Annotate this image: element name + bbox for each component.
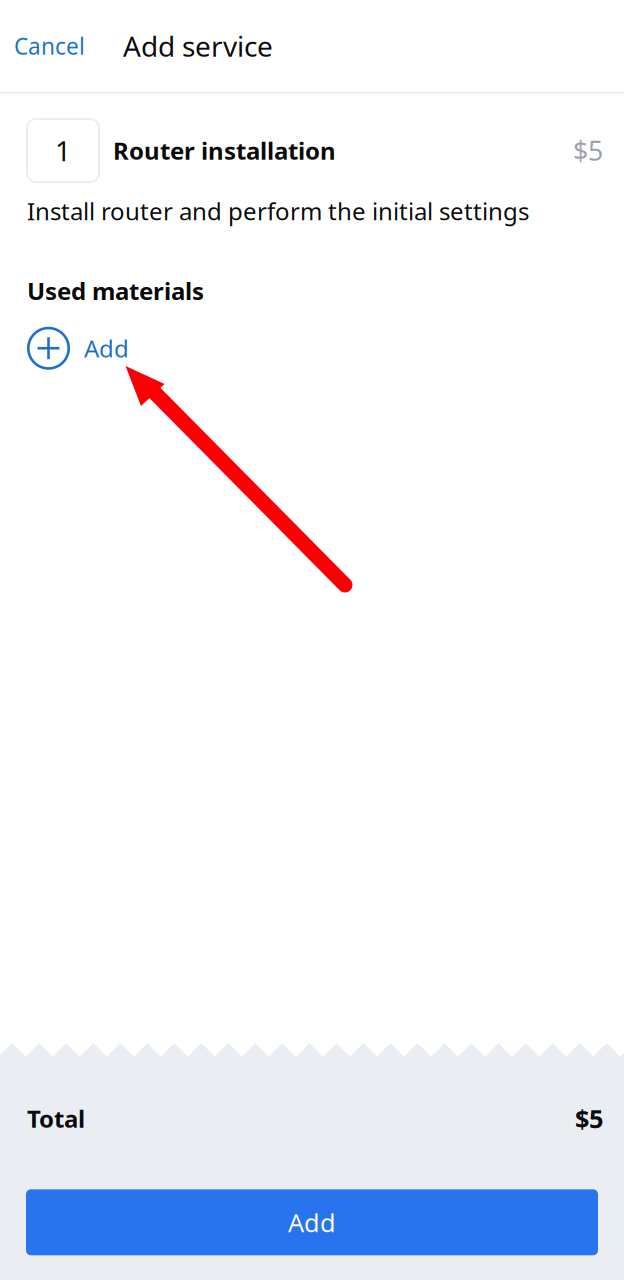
staticText: Cancel	[14, 31, 85, 61]
staticText: Install router and perform the initial s…	[27, 195, 529, 227]
staticText: Used materials	[27, 275, 204, 307]
button[interactable]: Add	[26, 1189, 598, 1255]
staticText: Add	[288, 1205, 336, 1239]
button[interactable]: Cancel	[0, 19, 99, 73]
staticText: Add service	[123, 27, 273, 65]
staticText: Router installation	[113, 135, 336, 166]
button[interactable]: Add	[27, 327, 129, 370]
staticText: 1	[55, 132, 71, 169]
staticText: $5	[573, 133, 603, 168]
staticText: $5	[575, 1102, 603, 1135]
staticText: Add	[84, 332, 129, 364]
button[interactable]: Quantity	[27, 119, 99, 182]
staticText: Total	[27, 1103, 85, 1134]
